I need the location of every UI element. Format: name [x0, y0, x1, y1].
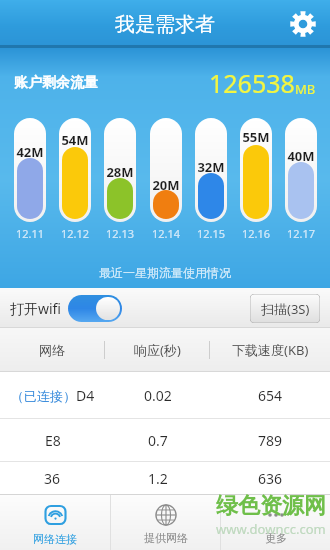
- staticText: 12.13: [106, 226, 135, 238]
- staticText: D4: [76, 386, 95, 405]
- staticText: 55M: [242, 128, 270, 146]
- button[interactable]: （已连接）: [0, 372, 330, 418]
- button[interactable]: Settings: [284, 5, 322, 43]
- staticText: 更多: [265, 531, 287, 545]
- staticText: 12.14: [152, 226, 181, 238]
- staticText: 1.2: [148, 469, 168, 488]
- button[interactable]: Toggle wifi: [68, 295, 122, 322]
- staticText: 126538: [209, 66, 295, 100]
- staticText: E8: [45, 431, 61, 450]
- button[interactable]: 网络连接: [0, 495, 110, 550]
- staticText: 响应(秒): [134, 341, 181, 359]
- staticText: 提供网络: [144, 531, 188, 545]
- staticText: 我是需求者: [115, 12, 215, 37]
- staticText: 12.17: [287, 226, 316, 238]
- staticText: 打开wifi: [10, 299, 62, 318]
- staticText: 账户剩余流量: [14, 74, 98, 92]
- staticText: 0.7: [148, 431, 168, 450]
- staticText: 12.15: [197, 226, 226, 238]
- staticText: 42M: [16, 143, 44, 161]
- staticText: 36: [44, 469, 61, 488]
- staticText: 12.11: [16, 226, 45, 238]
- staticText: 网络连接: [33, 532, 77, 546]
- staticText: 0.02: [144, 386, 172, 405]
- staticText: www.downcc.com: [216, 520, 326, 538]
- staticText: 最近一星期流量使用情况: [99, 265, 231, 280]
- staticText: 789: [258, 431, 283, 450]
- staticText: 扫描(3S): [261, 300, 310, 318]
- staticText: 28M: [106, 163, 134, 181]
- staticText: 654: [258, 386, 283, 405]
- staticText: （已连接）: [11, 388, 76, 404]
- staticText: 12.12: [61, 226, 90, 238]
- staticText: 20M: [152, 176, 180, 194]
- staticText: 绿色资源网: [216, 492, 326, 520]
- staticText: 32M: [197, 158, 225, 176]
- button[interactable]: 扫描(3S): [250, 294, 320, 323]
- staticText: MB: [295, 80, 316, 98]
- staticText: 12.16: [242, 226, 271, 238]
- button[interactable]: 提供网络: [111, 495, 220, 550]
- button[interactable]: 更多: [221, 495, 330, 550]
- staticText: 下载速度(KB): [232, 341, 309, 359]
- staticText: 网络: [39, 342, 65, 358]
- button[interactable]: 36: [0, 462, 330, 494]
- staticText: 54M: [61, 131, 89, 149]
- button[interactable]: E8: [0, 419, 330, 461]
- staticText: 40M: [287, 147, 315, 165]
- staticText: 636: [258, 469, 283, 488]
